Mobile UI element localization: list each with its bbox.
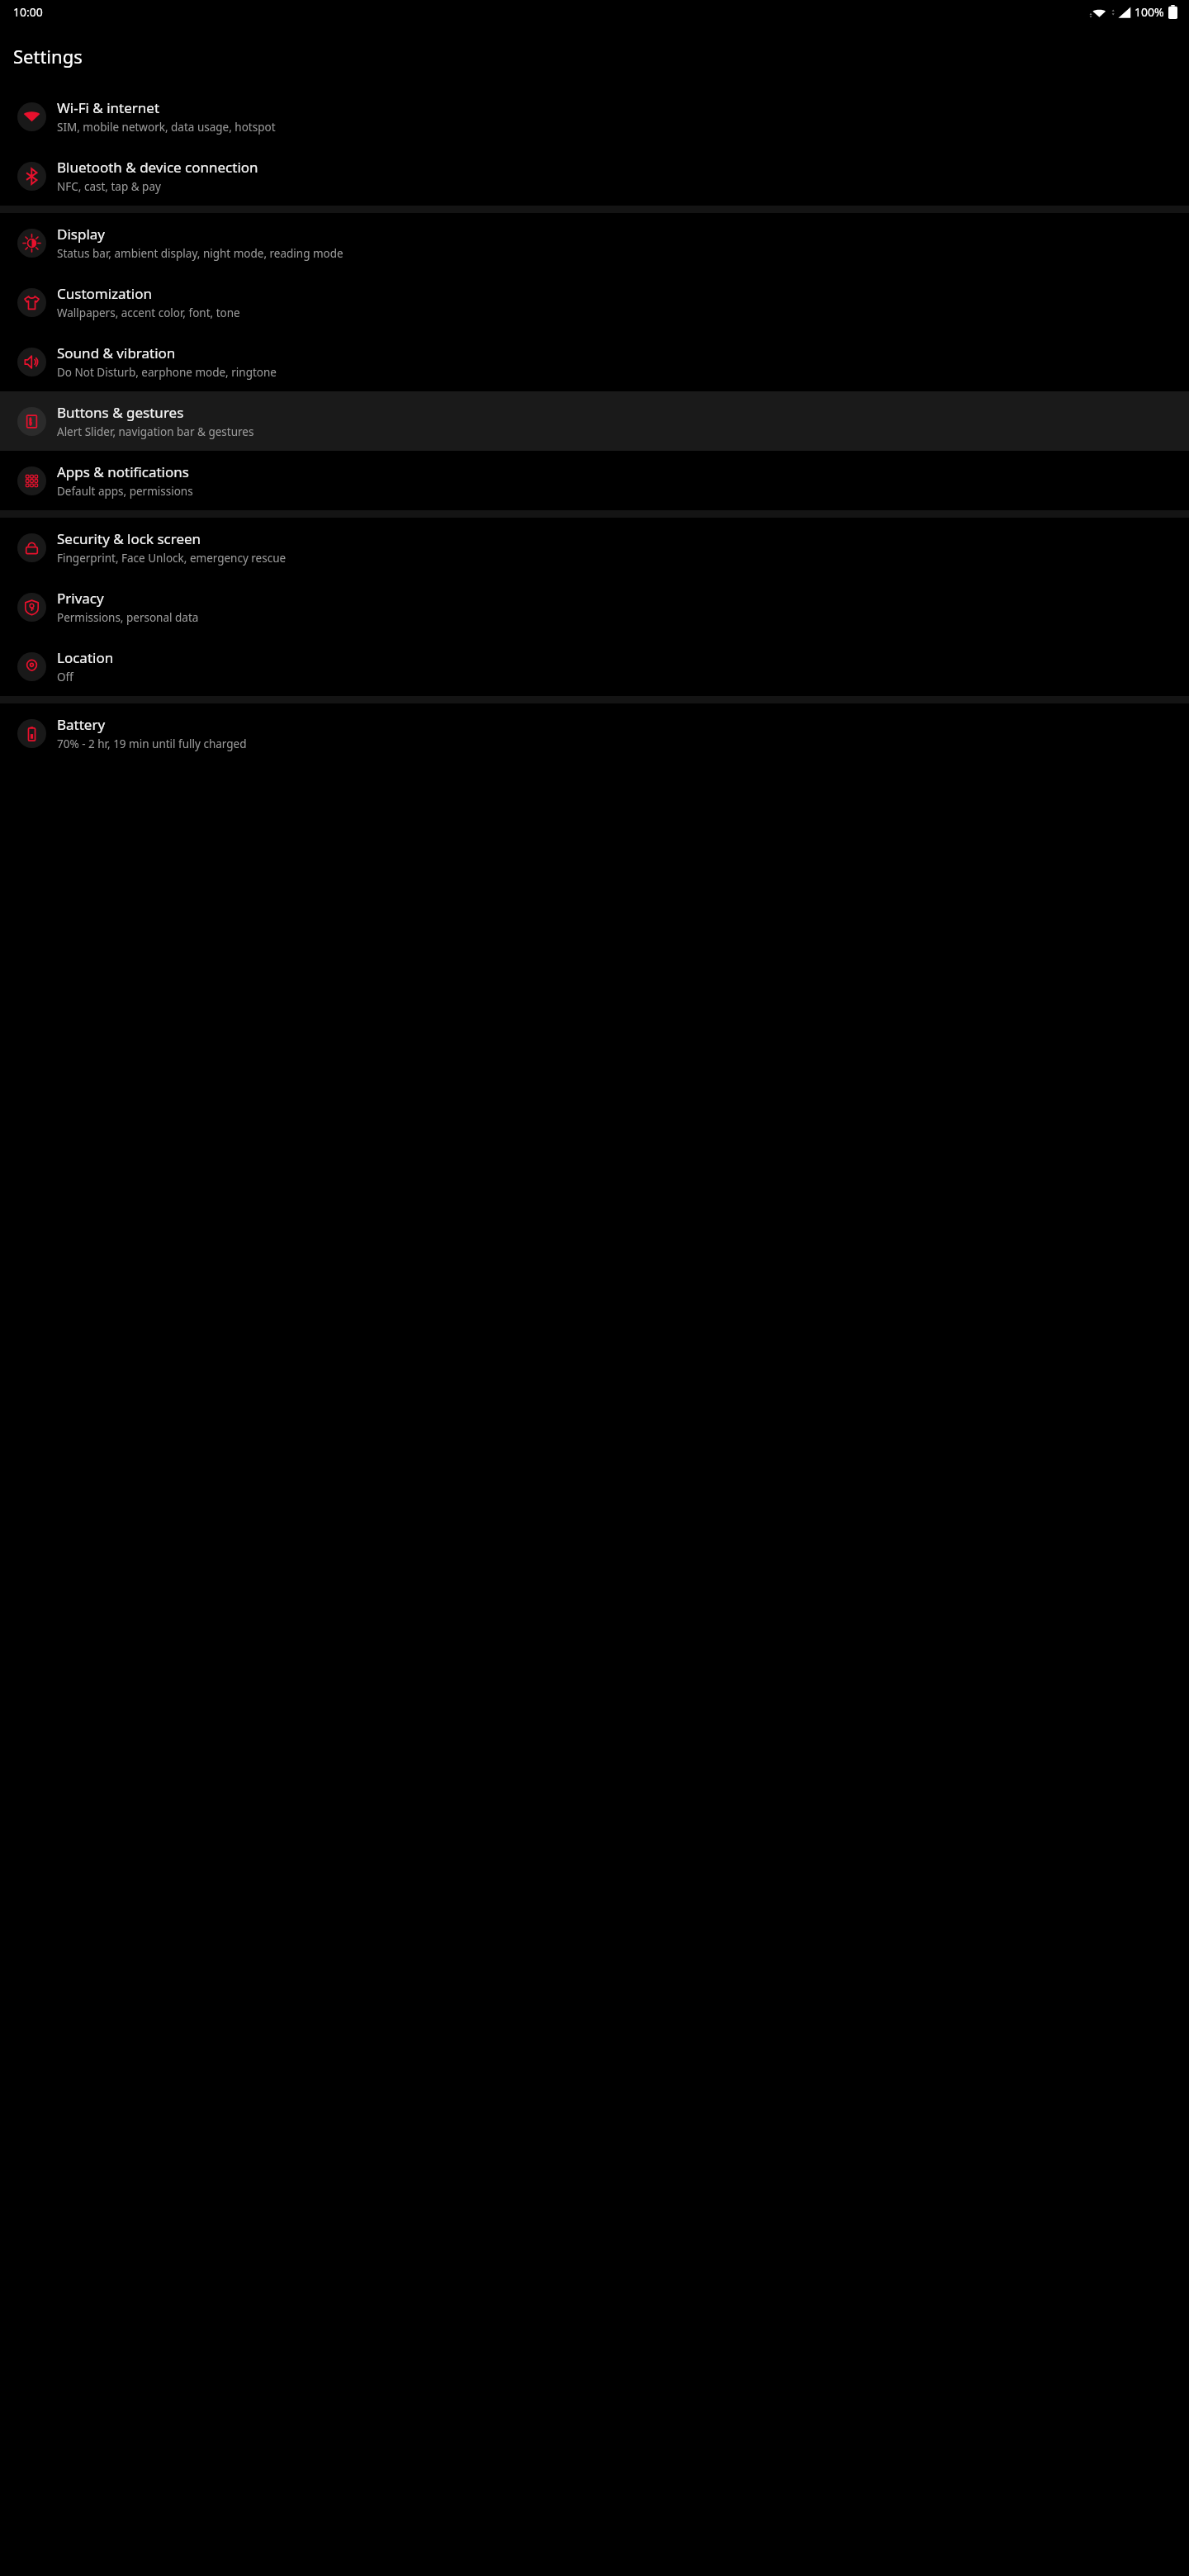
button[interactable]: Location bbox=[0, 637, 1189, 696]
staticText: Battery bbox=[57, 715, 106, 734]
staticText: Default apps, permissions bbox=[57, 484, 193, 499]
staticText: Display bbox=[57, 225, 105, 244]
staticText: Security & lock screen bbox=[57, 529, 201, 548]
staticText: SIM, mobile network, data usage, hotspot bbox=[57, 120, 276, 135]
button[interactable]: Customization bbox=[0, 272, 1189, 332]
staticText: Fingerprint, Face Unlock, emergency resc… bbox=[57, 551, 287, 566]
staticText: Wi-Fi & internet bbox=[57, 98, 160, 117]
staticText: Do Not Disturb, earphone mode, ringtone bbox=[57, 365, 277, 380]
staticText: Buttons & gestures bbox=[57, 403, 184, 422]
button[interactable]: Display bbox=[0, 213, 1189, 272]
staticText: 10:00 bbox=[13, 4, 43, 20]
staticText: Alert Slider, navigation bar & gestures bbox=[57, 424, 254, 439]
button[interactable]: Apps & notifications bbox=[0, 451, 1189, 510]
button[interactable]: Privacy bbox=[0, 577, 1189, 637]
staticText: Location bbox=[57, 648, 114, 667]
button[interactable]: Buttons & gestures bbox=[0, 391, 1189, 451]
staticText: Status bar, ambient display, night mode,… bbox=[57, 246, 343, 261]
button[interactable]: Security & lock screen bbox=[0, 518, 1189, 577]
button[interactable]: Bluetooth & device connection bbox=[0, 146, 1189, 206]
staticText: NFC, cast, tap & pay bbox=[57, 179, 161, 194]
staticText: Permissions, personal data bbox=[57, 610, 199, 625]
staticText: Customization bbox=[57, 284, 152, 303]
button[interactable]: Battery bbox=[0, 703, 1189, 763]
staticText: Off bbox=[57, 670, 73, 684]
staticText: Apps & notifications bbox=[57, 462, 189, 481]
button[interactable]: Wi-Fi & internet bbox=[0, 87, 1189, 146]
button[interactable]: Sound & vibration bbox=[0, 332, 1189, 391]
staticText: Wallpapers, accent color, font, tone bbox=[57, 305, 240, 320]
staticText: Sound & vibration bbox=[57, 343, 176, 362]
staticText: 100% bbox=[1135, 4, 1164, 20]
staticText: 70% - 2 hr, 19 min until fully charged bbox=[57, 736, 247, 751]
staticText: Bluetooth & device connection bbox=[57, 158, 258, 177]
staticText: Privacy bbox=[57, 589, 104, 608]
staticText: Settings bbox=[13, 44, 83, 69]
